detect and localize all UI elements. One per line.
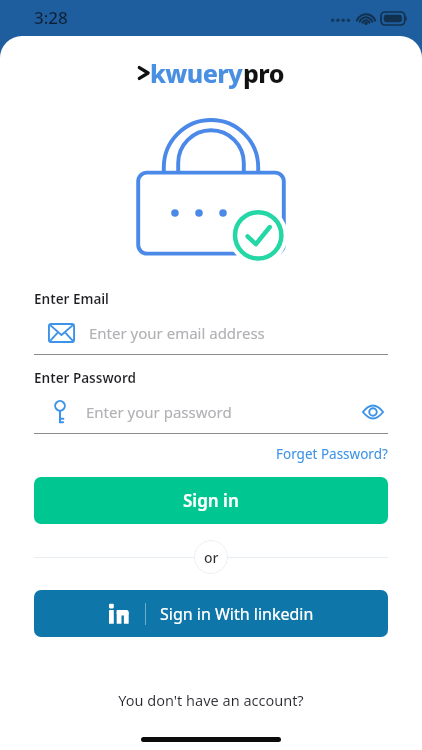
staticText: pro (243, 56, 284, 90)
button[interactable]: Show password (358, 397, 388, 427)
staticText: Enter Email (34, 290, 109, 308)
staticText: You don't have an account? (118, 690, 304, 710)
staticText: or (204, 548, 219, 567)
staticText: Sign in (183, 489, 239, 512)
button[interactable]: Sign in With linkedin (34, 590, 388, 637)
staticText: Sign in With linkedin (160, 603, 314, 625)
button[interactable]: Enter your password (34, 396, 388, 427)
staticText: Enter your password (86, 402, 232, 422)
staticText: Forget Password? (276, 445, 388, 463)
button[interactable]: Enter your email address (34, 317, 388, 348)
button[interactable]: You don't have an account? (118, 690, 304, 710)
button[interactable]: Forget Password? (276, 445, 388, 463)
button[interactable]: Sign in (34, 477, 388, 524)
staticText: Enter your email address (89, 323, 265, 343)
staticText: Enter Password (34, 369, 136, 387)
staticText: 3:28 (34, 6, 68, 29)
staticText: kwuery (150, 56, 243, 90)
